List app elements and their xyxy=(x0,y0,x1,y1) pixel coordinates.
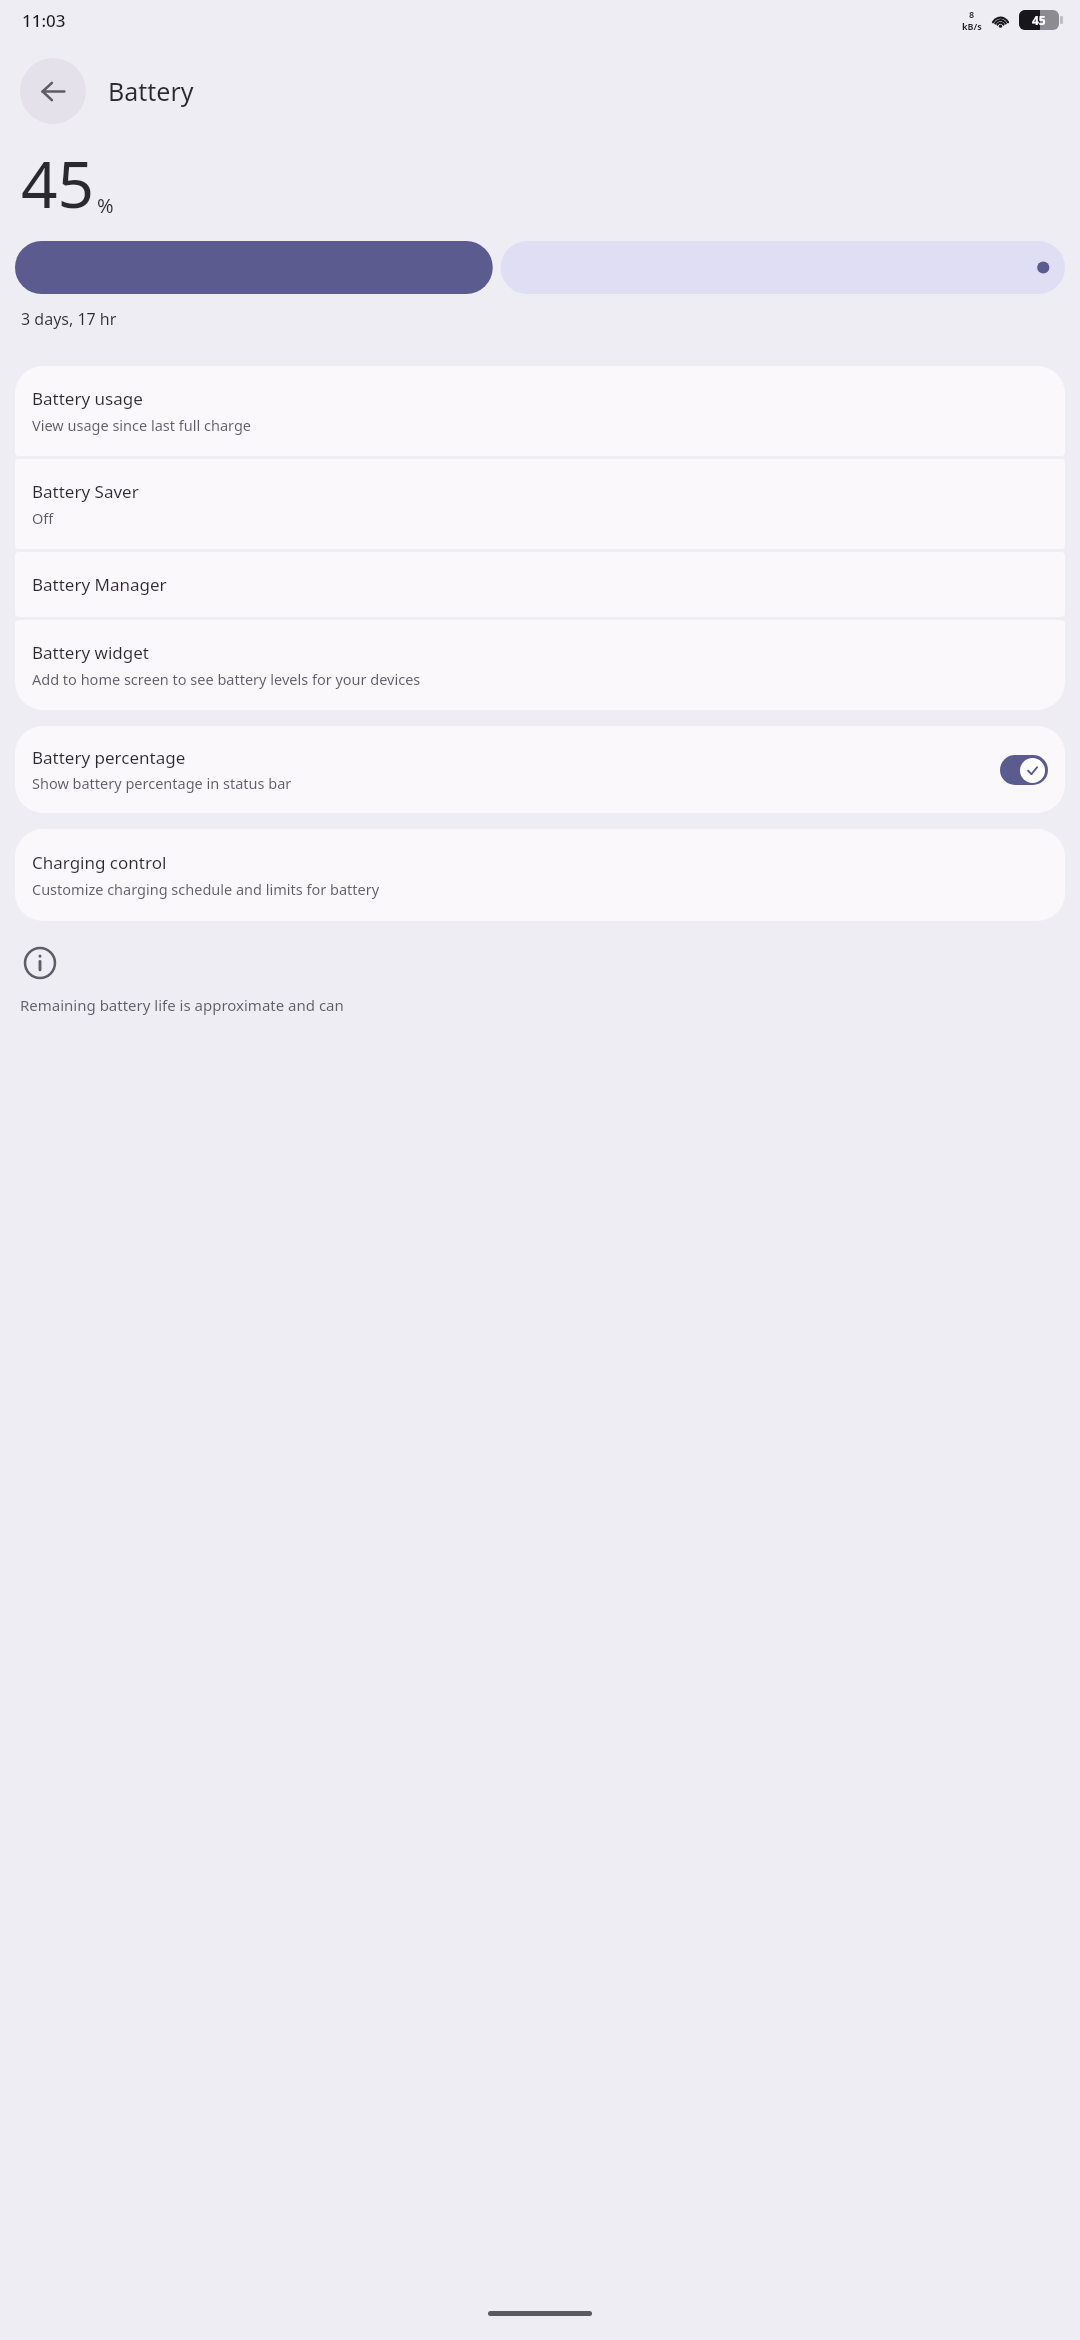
staticText: 11:03 xyxy=(22,9,66,32)
button[interactable]: Charging control xyxy=(15,829,1065,921)
button[interactable]: Information xyxy=(20,943,60,983)
staticText: Battery xyxy=(108,74,194,108)
button[interactable]: Battery usage xyxy=(15,366,1065,456)
staticText: 45 xyxy=(1032,12,1046,28)
button[interactable]: Battery percentage xyxy=(15,726,1065,813)
staticText: kB/s xyxy=(962,20,982,32)
staticText: % xyxy=(97,192,114,219)
staticText: 8 xyxy=(969,8,975,20)
staticText: Battery widget xyxy=(32,641,149,664)
staticText: 45 xyxy=(21,140,95,227)
staticText: Battery Manager xyxy=(32,573,167,596)
staticText: Charging control xyxy=(32,851,167,874)
staticText: Off xyxy=(32,508,54,528)
staticText: Remaining battery life is approximate an… xyxy=(20,995,344,1015)
staticText: Battery percentage xyxy=(32,746,186,769)
staticText: 3 days, 17 hr xyxy=(21,308,117,330)
staticText: Show battery percentage in status bar xyxy=(32,773,292,793)
staticText: View usage since last full charge xyxy=(32,415,251,435)
staticText: Battery usage xyxy=(32,387,143,410)
button[interactable]: Battery Saver xyxy=(15,459,1065,549)
staticText: Customize charging schedule and limits f… xyxy=(32,879,380,899)
staticText: Battery Saver xyxy=(32,480,139,503)
button[interactable]: Battery widget xyxy=(15,620,1065,710)
button[interactable]: Back xyxy=(20,58,86,124)
button[interactable]: Battery Manager xyxy=(15,552,1065,617)
staticText: Add to home screen to see battery levels… xyxy=(32,669,421,689)
button[interactable]: Battery percentage toggle xyxy=(1000,755,1048,785)
